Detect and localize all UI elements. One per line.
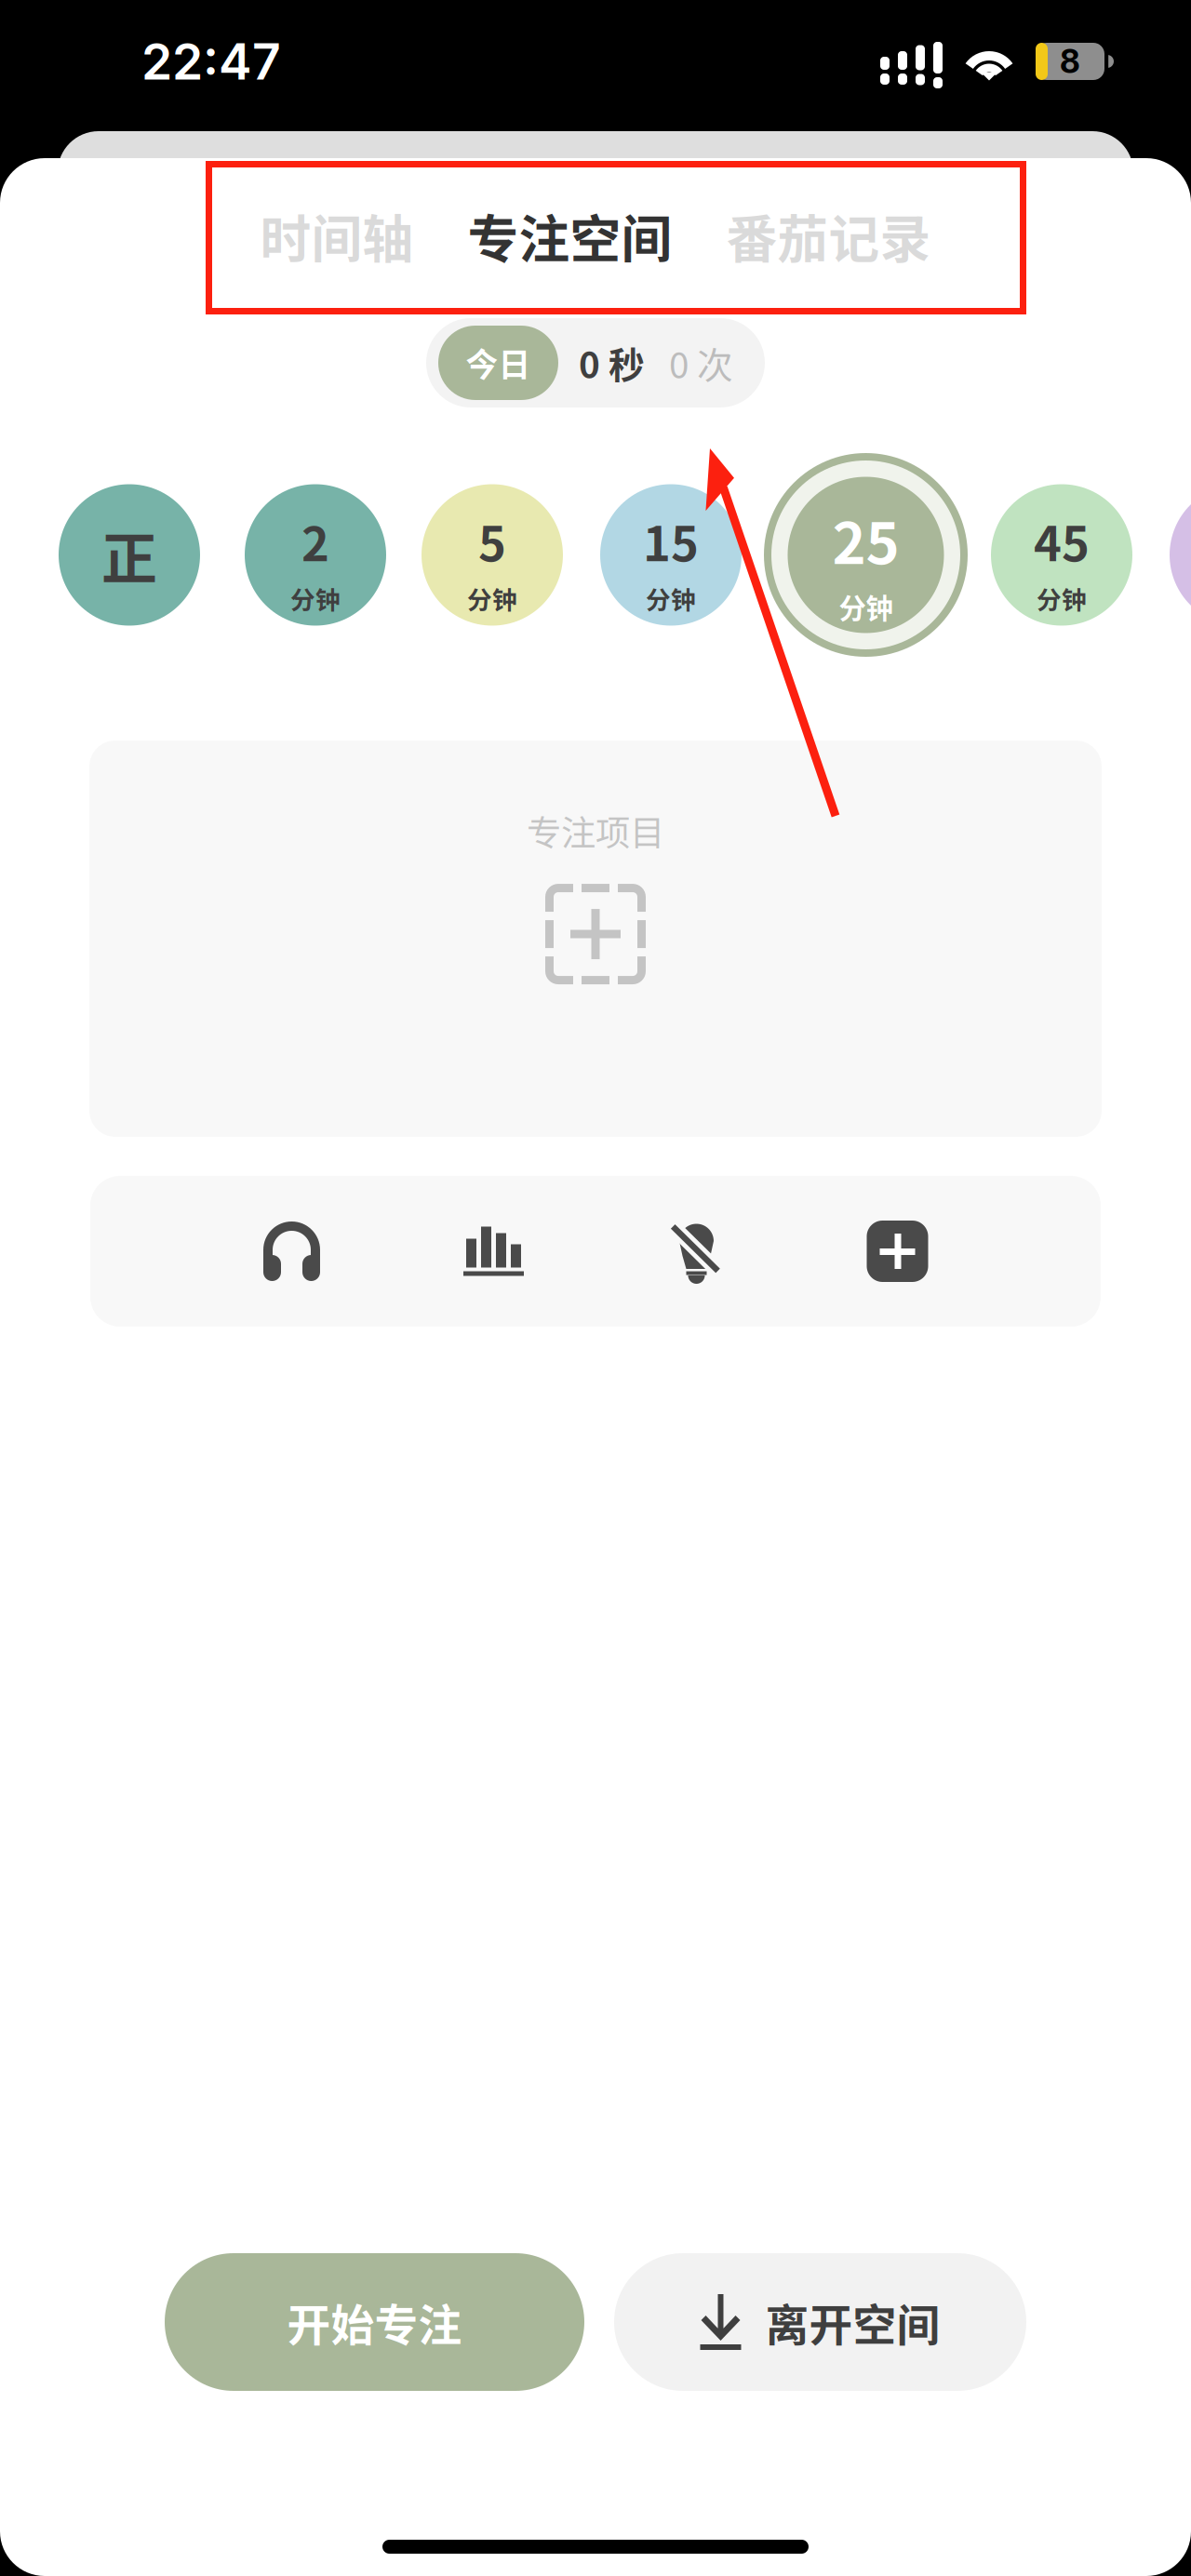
staticText: 0 秒 (579, 337, 645, 389)
button[interactable]: 离开空间 (614, 2253, 1026, 2391)
staticText: 15 (643, 507, 699, 575)
button[interactable]: Statistics (393, 1176, 595, 1327)
button[interactable]: Sound (191, 1176, 393, 1327)
button[interactable]: 5 (422, 484, 563, 626)
button[interactable]: 正 (59, 484, 200, 626)
button[interactable]: 专注空间 (468, 194, 672, 277)
staticText: 分钟 (839, 587, 893, 626)
button[interactable]: 60 (1170, 484, 1191, 626)
button[interactable]: 2 (245, 484, 386, 626)
staticText: 5 (478, 507, 506, 575)
button[interactable]: Keep screen awake (595, 1176, 796, 1327)
staticText: 分钟 (290, 580, 341, 616)
button[interactable]: 45 (991, 484, 1132, 626)
button[interactable]: 今日 (426, 318, 765, 407)
button[interactable]: Add (796, 1176, 998, 1327)
staticText: 开始专注 (287, 2291, 462, 2353)
staticText: 时间轴 (260, 199, 414, 272)
staticText: 25 (832, 498, 899, 580)
staticText: 22:47 (141, 31, 281, 91)
button[interactable]: 番茄记录 (726, 194, 931, 277)
staticText: 0 次 (669, 337, 733, 389)
button[interactable]: 25 (764, 453, 968, 657)
staticText: 专注空间 (468, 199, 672, 272)
staticText: 8 (1060, 42, 1080, 81)
staticText: 正 (101, 515, 157, 595)
staticText: 2 (301, 507, 329, 575)
button[interactable]: 15 (600, 484, 742, 626)
staticText: 离开空间 (765, 2291, 940, 2353)
staticText: 今日 (466, 339, 531, 386)
button[interactable]: 开始专注 (165, 2253, 584, 2391)
button[interactable]: Add focus project (545, 884, 646, 984)
button[interactable]: 时间轴 (260, 194, 414, 277)
staticText: 分钟 (646, 580, 696, 616)
staticText: 番茄记录 (726, 199, 931, 272)
staticText: 45 (1034, 507, 1090, 575)
staticText: 专注项目 (527, 806, 664, 856)
staticText: 分钟 (1037, 580, 1087, 616)
staticText: 分钟 (467, 580, 517, 616)
